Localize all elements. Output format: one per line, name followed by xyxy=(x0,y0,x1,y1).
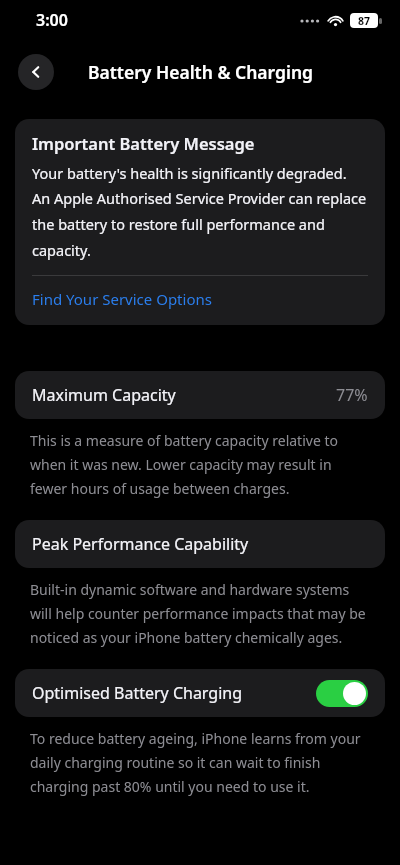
staticText: Find Your Service Options xyxy=(32,289,212,309)
button[interactable]: Find Your Service Options xyxy=(15,276,385,322)
staticText: Important Battery Message xyxy=(32,132,255,154)
button[interactable]: Back xyxy=(18,54,54,90)
staticText: Peak Performance Capability xyxy=(32,533,368,555)
button[interactable]: Peak Performance Capability xyxy=(15,520,385,568)
staticText: To reduce battery ageing, iPhone learns … xyxy=(30,729,372,796)
staticText: 87 xyxy=(358,14,371,28)
staticText: 77% xyxy=(336,384,368,406)
staticText: Your battery's health is significantly d… xyxy=(32,163,368,261)
staticText: Optimised Battery Charging xyxy=(32,682,316,704)
button[interactable]: Optimised Battery Charging xyxy=(15,669,385,717)
staticText: Built-in dynamic software and hardware s… xyxy=(30,580,372,647)
staticText: This is a measure of battery capacity re… xyxy=(30,431,372,498)
button[interactable]: Optimised Battery Charging toggle xyxy=(316,680,368,707)
staticText: 3:00 xyxy=(36,9,68,31)
button[interactable]: Maximum Capacity xyxy=(15,371,385,419)
staticText: Battery Health & Charging xyxy=(88,60,313,84)
staticText: Maximum Capacity xyxy=(32,384,336,406)
